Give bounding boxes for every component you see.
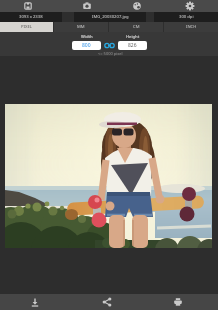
button[interactable]: 300 dpi: [154, 12, 218, 22]
button[interactable]: [183, 0, 197, 12]
button[interactable]: 826: [118, 41, 147, 50]
button[interactable]: [170, 294, 186, 310]
button[interactable]: [80, 0, 94, 12]
button[interactable]: INCH: [164, 22, 218, 32]
staticText: MM: [77, 24, 85, 30]
button[interactable]: CM: [109, 22, 163, 32]
button[interactable]: [21, 0, 35, 12]
button[interactable]: [103, 41, 116, 50]
staticText: 300 dpi: [179, 14, 194, 20]
button[interactable]: MM: [54, 22, 108, 32]
staticText: IMG_20030207.jpg: [92, 14, 129, 20]
button[interactable]: IMG_20030207.jpg: [74, 12, 146, 22]
staticText: CM: [133, 24, 140, 30]
staticText: 800: [82, 42, 91, 49]
staticText: Height: [126, 34, 140, 40]
button[interactable]: 800: [72, 41, 101, 50]
button[interactable]: [130, 0, 144, 12]
button[interactable]: [27, 294, 43, 310]
staticText: <= 5000 pixel: [98, 51, 123, 56]
staticText: INCH: [186, 24, 197, 30]
button[interactable]: PIXEL: [0, 22, 53, 32]
button[interactable]: [99, 294, 115, 310]
button[interactable]: 3093 x 2338: [0, 12, 62, 22]
staticText: PIXEL: [21, 24, 32, 30]
staticText: 826: [128, 42, 137, 49]
staticText: Width: [81, 34, 93, 40]
staticText: 3093 x 2338: [19, 14, 43, 20]
